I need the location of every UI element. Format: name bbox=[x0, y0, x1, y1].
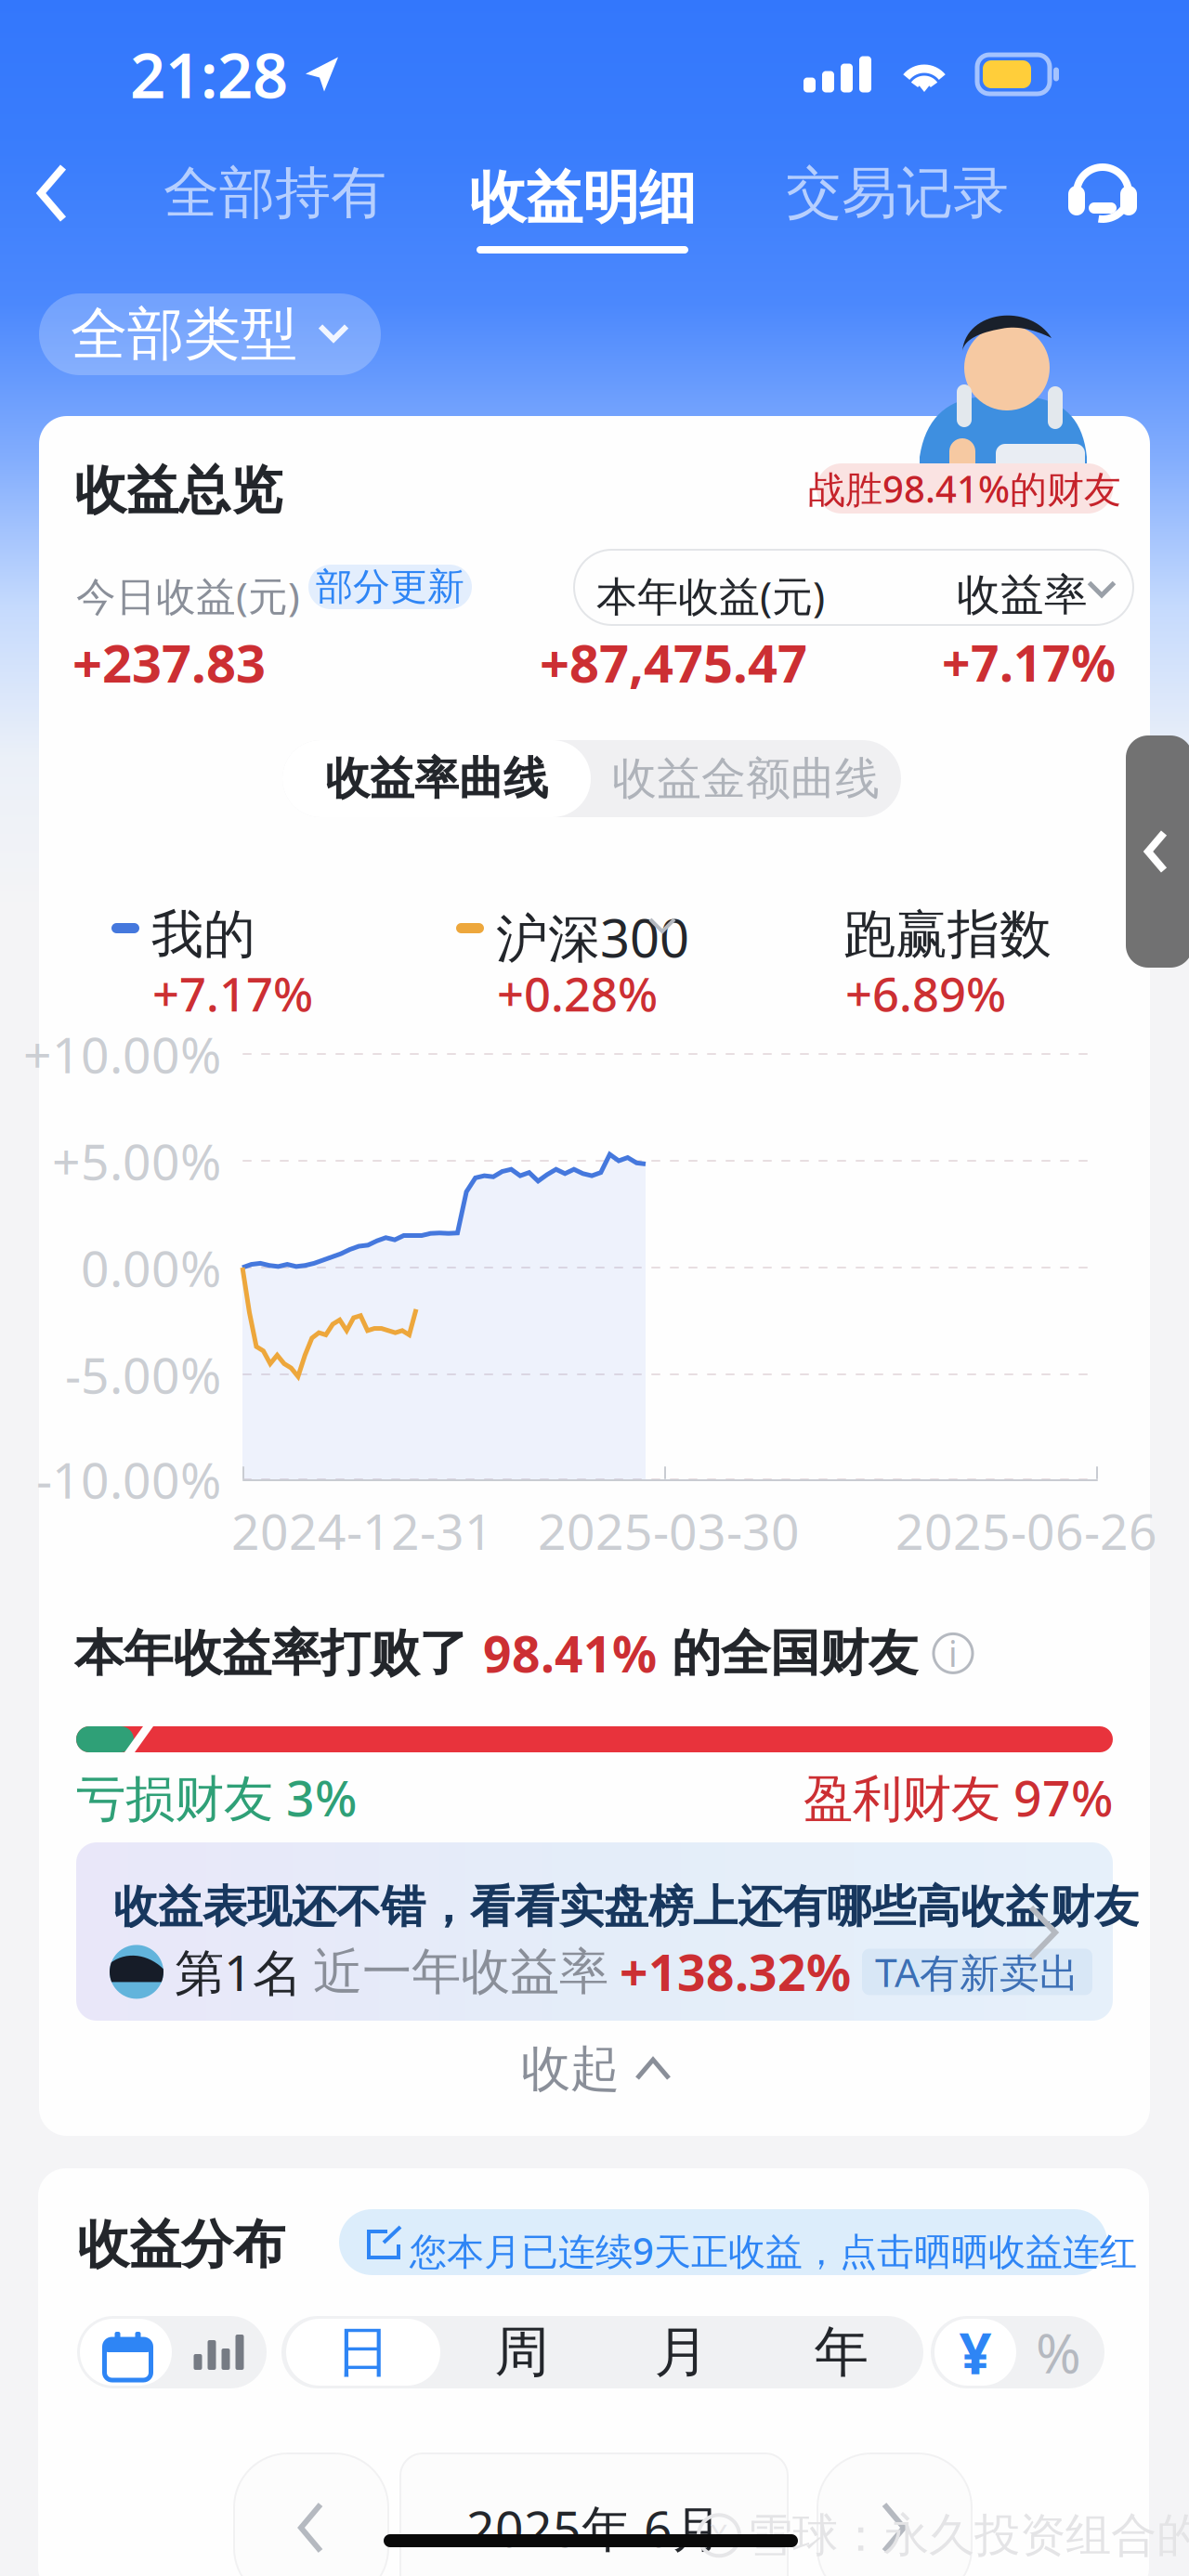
staticText: 近一年收益率 bbox=[313, 1941, 608, 2002]
staticText: -5.00% bbox=[65, 1341, 221, 1407]
staticText: 2025-03-30 bbox=[538, 1498, 800, 1564]
button[interactable]: 您本月已连续9天正收益，点击晒晒收益连红 bbox=[339, 2209, 1107, 2275]
staticText: +7.17% bbox=[942, 630, 1116, 695]
staticText: +7.17% bbox=[152, 962, 313, 1025]
staticText: 本年收益率打败了 bbox=[74, 1623, 483, 1684]
staticText: 今日收益(元) bbox=[76, 569, 300, 622]
staticText: 您本月已连续9天正收益，点击晒晒收益连红 bbox=[410, 2226, 1137, 2275]
staticText: 我的 bbox=[151, 903, 255, 967]
staticText: i bbox=[948, 1630, 958, 1676]
staticText: 沪深300 bbox=[496, 903, 689, 972]
staticText: X bbox=[710, 2516, 728, 2555]
staticText: 98.41% bbox=[483, 1620, 657, 1686]
staticText: 盈利财友 97% bbox=[804, 1764, 1113, 1830]
button[interactable]: 日 bbox=[286, 2319, 440, 2386]
staticText: +87,475.47 bbox=[540, 628, 807, 697]
staticText: 本年收益(元) bbox=[596, 568, 825, 623]
staticText: 收益金额曲线 bbox=[612, 751, 880, 806]
staticText: +0.28% bbox=[497, 962, 658, 1025]
staticText: % bbox=[1036, 2316, 1081, 2388]
button[interactable]: 收益金额曲线 bbox=[593, 740, 899, 817]
staticText: +5.00% bbox=[52, 1128, 221, 1194]
staticText: +10.00% bbox=[23, 1021, 221, 1087]
button[interactable]: Calendar view bbox=[80, 2319, 172, 2386]
staticText: 周 bbox=[495, 2319, 549, 2386]
staticText: 2025-06-26 bbox=[895, 1498, 1157, 1564]
button[interactable]: 全部类型 bbox=[39, 293, 381, 375]
staticText: 收益分布 bbox=[77, 2213, 285, 2277]
staticText: 雪球：永久投资组合的海贼 bbox=[747, 2507, 1189, 2564]
button[interactable]: Previous month bbox=[234, 2453, 388, 2576]
staticText: 全部类型 bbox=[71, 299, 297, 369]
button[interactable]: 收益明细 bbox=[466, 147, 699, 249]
staticText: 日 bbox=[336, 2319, 391, 2386]
staticText: 2025年 6月 bbox=[466, 2495, 722, 2561]
button[interactable]: 周 bbox=[442, 2319, 602, 2386]
staticText: 21:28 bbox=[130, 33, 288, 115]
button[interactable]: % bbox=[1016, 2319, 1101, 2386]
button[interactable]: ¥ bbox=[934, 2319, 1016, 2386]
button[interactable]: 收益率曲线 bbox=[282, 740, 591, 817]
staticText: TA有新卖出 bbox=[875, 1945, 1079, 1998]
button[interactable]: 年 bbox=[762, 2319, 921, 2386]
button[interactable]: 月 bbox=[602, 2319, 762, 2386]
staticText: 收益明细 bbox=[469, 163, 696, 233]
button[interactable]: Back bbox=[30, 149, 110, 238]
staticText: 亏损财友 3% bbox=[76, 1764, 357, 1830]
staticText: ¥ bbox=[959, 2314, 992, 2390]
button[interactable]: 收益表现还不错，看看实盘榜上还有哪些高收益财友 bbox=[76, 1842, 1113, 2021]
staticText: 跑赢指数 bbox=[843, 903, 1052, 967]
staticText: 的全国财友 bbox=[657, 1623, 918, 1684]
staticText: 第1名 bbox=[175, 1939, 302, 2005]
staticText: 部分更新 bbox=[316, 564, 464, 610]
staticText: +6.89% bbox=[845, 962, 1006, 1025]
button[interactable]: Next month bbox=[817, 2453, 972, 2576]
button[interactable]: Expand panel bbox=[1126, 735, 1189, 968]
staticText: 全部持有 bbox=[163, 159, 386, 227]
button[interactable]: 本年收益(元) bbox=[574, 550, 1133, 625]
staticText: 收益率曲线 bbox=[325, 751, 548, 806]
button[interactable]: 全部持有 bbox=[173, 152, 377, 234]
staticText: 收益总览 bbox=[74, 459, 282, 523]
staticText: 交易记录 bbox=[786, 159, 1009, 227]
button[interactable]: Chart view bbox=[173, 2319, 265, 2386]
staticText: 收益率 bbox=[957, 568, 1088, 622]
staticText: -10.00% bbox=[36, 1446, 221, 1512]
staticText: 月 bbox=[654, 2319, 709, 2386]
staticText: 年 bbox=[814, 2319, 869, 2386]
staticText: +237.83 bbox=[72, 628, 266, 697]
button[interactable]: 交易记录 bbox=[795, 152, 1000, 234]
button[interactable]: Customer service bbox=[1061, 150, 1144, 234]
staticText: 战胜98.41%的财友 bbox=[808, 464, 1121, 513]
staticText: 收起 bbox=[521, 2039, 620, 2099]
staticText: +138.32% bbox=[620, 1939, 851, 2005]
button[interactable]: 收起 bbox=[476, 2032, 717, 2106]
button[interactable]: 2025年 6月 bbox=[400, 2453, 788, 2576]
staticText: 收益表现还不错，看看实盘榜上还有哪些高收益财友 bbox=[113, 1880, 1139, 1934]
staticText: 2024-12-31 bbox=[231, 1498, 493, 1564]
staticText: 0.00% bbox=[81, 1235, 221, 1300]
